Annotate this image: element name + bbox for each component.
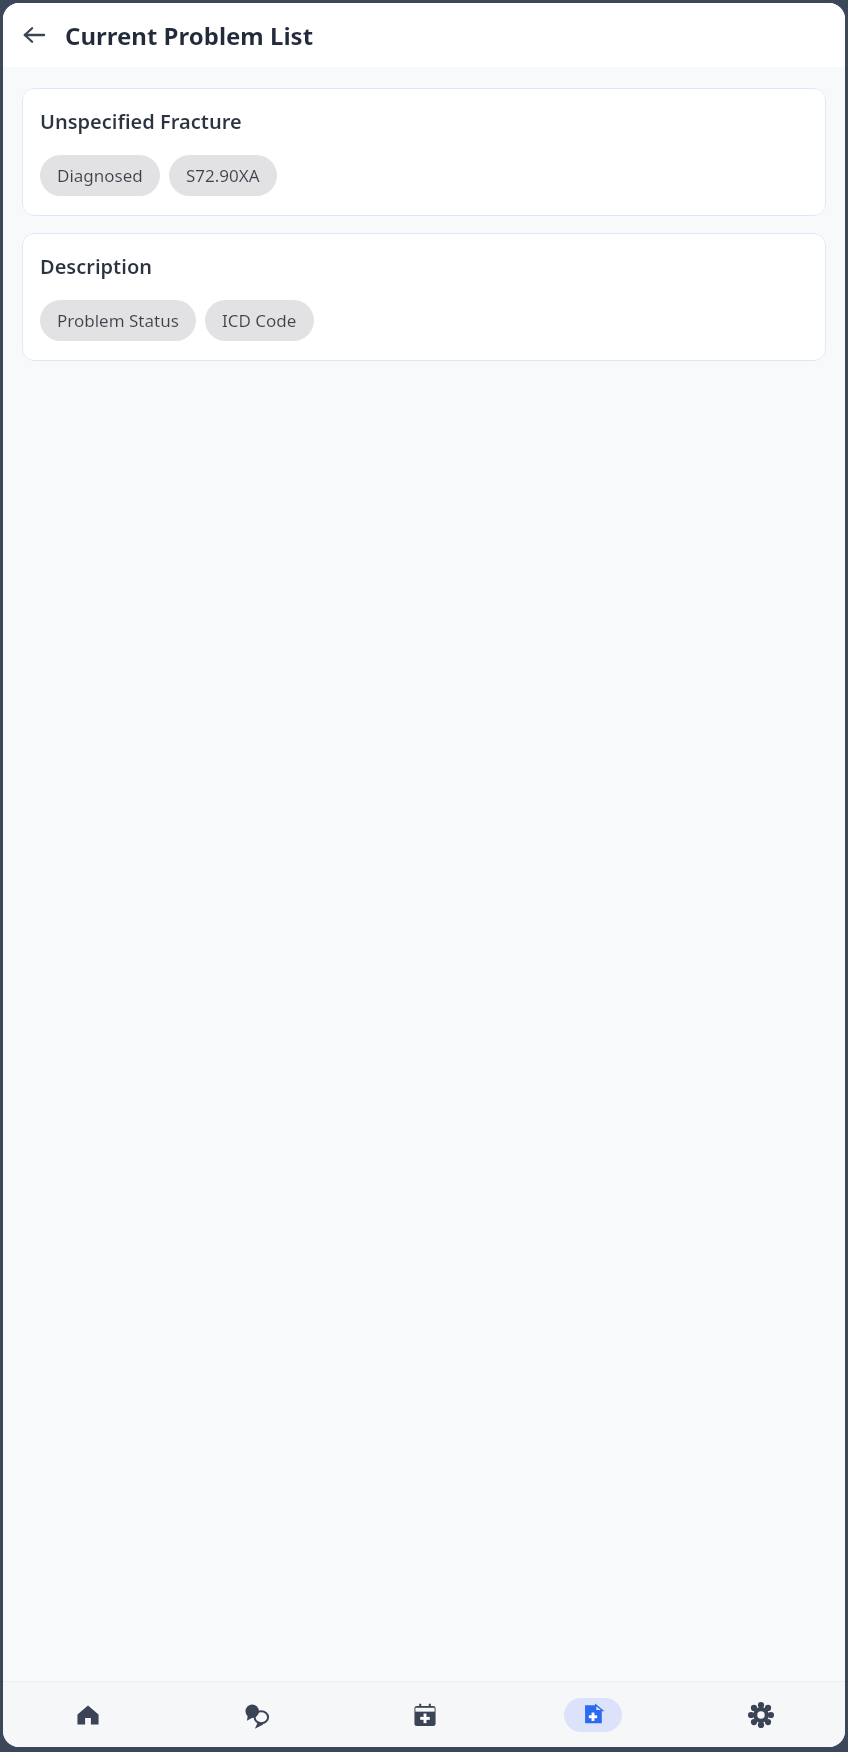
staticText: Description: [40, 253, 152, 280]
staticText: S72.90XA: [186, 164, 260, 187]
staticText: Problem Status: [57, 309, 179, 332]
button[interactable]: ICD Code: [205, 300, 314, 341]
button[interactable]: Settings: [677, 1682, 845, 1747]
button[interactable]: Unspecified Fracture: [22, 88, 826, 216]
staticText: ICD Code: [222, 309, 297, 332]
button[interactable]: Problem Status: [40, 300, 196, 341]
button[interactable]: S72.90XA: [169, 155, 277, 196]
button[interactable]: Schedule: [341, 1682, 509, 1747]
button[interactable]: Messages: [172, 1682, 341, 1747]
staticText: Diagnosed: [57, 164, 143, 187]
button[interactable]: Back: [12, 13, 56, 57]
staticText: Current Problem List: [65, 19, 314, 52]
button[interactable]: Home: [3, 1682, 172, 1747]
button[interactable]: Description: [22, 233, 826, 361]
button[interactable]: Diagnosed: [40, 155, 160, 196]
button[interactable]: New document: [564, 1698, 622, 1732]
staticText: Unspecified Fracture: [40, 108, 242, 135]
